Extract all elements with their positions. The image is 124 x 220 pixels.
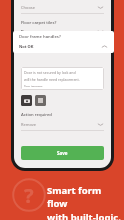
staticText: Door frame handles? [19,34,61,40]
staticText: with built-logic. [47,211,121,220]
staticText: Yes [21,29,97,34]
staticText: Door is not secured by lock and [24,70,76,75]
staticText: Save [57,150,68,156]
button[interactable]: Photo attachment 1 [21,95,32,106]
staticText: Not OK [19,44,101,49]
staticText: Action required [21,112,52,118]
staticText: Smart form flow [47,184,121,210]
staticText: will the handle need replacement. [24,77,80,82]
staticText: See images. [24,84,44,87]
staticText: ? [24,182,34,209]
staticText: Remove [21,122,97,127]
button[interactable]: Save [21,146,104,160]
button[interactable]: Door frame handles? [19,34,108,50]
staticText: Choose [21,5,97,10]
button[interactable]: Photo attachment 2 [35,95,46,106]
staticText: Floor carpet tiles? [21,20,57,26]
button[interactable]: Door is not secured by lock and [24,70,101,87]
